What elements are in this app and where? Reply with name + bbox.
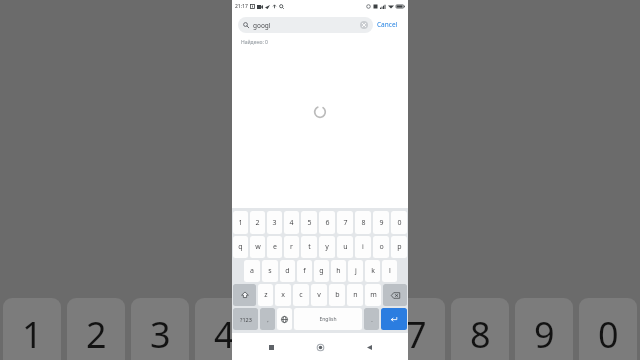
staticText: Cancel <box>377 20 398 29</box>
button[interactable]: a <box>244 260 260 282</box>
button[interactable]: googl <box>238 17 373 33</box>
staticText: 9 <box>379 218 384 228</box>
staticText: 1 <box>22 310 43 359</box>
button[interactable]: c <box>293 284 309 306</box>
button[interactable]: 8 <box>355 211 371 234</box>
staticText: s <box>268 266 272 276</box>
button[interactable]: m <box>365 284 381 306</box>
staticText: h <box>336 266 341 276</box>
staticText: 0 <box>397 218 402 228</box>
staticText: z <box>264 290 268 300</box>
staticText: 9 <box>534 310 555 359</box>
button[interactable]: Backspace <box>383 284 407 306</box>
staticText: 4 <box>214 310 235 359</box>
staticText: 5 <box>307 218 312 228</box>
button[interactable]: v <box>311 284 327 306</box>
staticText: ?123 <box>240 316 252 323</box>
staticText: 3 <box>150 310 171 359</box>
staticText: g <box>319 266 324 276</box>
button[interactable]: 3 <box>267 211 282 234</box>
button[interactable]: Cancel <box>373 16 402 33</box>
staticText: 5 <box>278 310 299 359</box>
button[interactable]: s <box>262 260 278 282</box>
button[interactable]: Recent apps <box>261 337 281 357</box>
staticText: l <box>389 266 391 276</box>
staticText: f <box>303 266 306 276</box>
button[interactable]: z <box>258 284 273 306</box>
button[interactable]: i <box>355 236 371 258</box>
button[interactable]: 9 <box>373 211 389 234</box>
staticText: . <box>371 316 373 323</box>
staticText: j <box>355 266 357 276</box>
staticText: googl <box>253 21 271 30</box>
staticText: k <box>371 266 375 276</box>
staticText: 0 <box>598 310 619 359</box>
button[interactable]: w <box>250 236 265 258</box>
button[interactable]: k <box>365 260 380 282</box>
button[interactable]: t <box>301 236 317 258</box>
button[interactable]: 4 <box>284 211 299 234</box>
staticText: c <box>299 290 303 300</box>
button[interactable]: 5 <box>301 211 317 234</box>
button[interactable]: English <box>294 308 362 330</box>
button[interactable]: q <box>233 236 248 258</box>
button[interactable]: Home <box>310 337 330 357</box>
button[interactable]: n <box>347 284 363 306</box>
staticText: o <box>379 242 384 252</box>
staticText: y <box>325 242 329 252</box>
button[interactable]: 2 <box>250 211 265 234</box>
button[interactable]: , <box>260 308 275 330</box>
staticText: 7 <box>406 310 427 359</box>
button[interactable]: Change language <box>277 308 292 330</box>
button[interactable]: 1 <box>233 211 248 234</box>
staticText: 3 <box>272 218 277 228</box>
staticText: m <box>370 290 377 300</box>
button[interactable]: u <box>337 236 353 258</box>
button[interactable]: . <box>364 308 379 330</box>
staticText: w <box>255 242 261 252</box>
staticText: 6 <box>342 310 363 359</box>
staticText: 8 <box>470 310 491 359</box>
button[interactable]: g <box>314 260 329 282</box>
staticText: 4 <box>289 218 294 228</box>
button[interactable]: 7 <box>337 211 353 234</box>
staticText: 8 <box>361 218 366 228</box>
button[interactable]: 6 <box>319 211 335 234</box>
button[interactable]: 0 <box>391 211 407 234</box>
button[interactable]: o <box>373 236 389 258</box>
button[interactable]: f <box>297 260 312 282</box>
button[interactable]: j <box>348 260 363 282</box>
button[interactable]: b <box>329 284 345 306</box>
staticText: d <box>285 266 290 276</box>
staticText: b <box>335 290 340 300</box>
button[interactable]: d <box>280 260 295 282</box>
button[interactable]: ?123 <box>233 308 258 330</box>
staticText: Найдено: 0 <box>241 39 268 46</box>
staticText: 7 <box>343 218 348 228</box>
staticText: 21:17 <box>235 3 248 10</box>
button[interactable]: Clear search <box>360 21 368 29</box>
staticText: v <box>317 290 321 300</box>
staticText: 2 <box>255 218 260 228</box>
staticText: u <box>343 242 348 252</box>
staticText: 1 <box>238 218 243 228</box>
button[interactable]: x <box>275 284 291 306</box>
button[interactable]: Back <box>359 337 379 357</box>
button[interactable]: p <box>391 236 407 258</box>
staticText: x <box>281 290 285 300</box>
button[interactable]: e <box>267 236 282 258</box>
staticText: e <box>273 242 277 252</box>
button[interactable]: Shift <box>233 284 256 306</box>
staticText: t <box>308 242 311 252</box>
button[interactable]: r <box>284 236 299 258</box>
staticText: 2 <box>86 310 107 359</box>
staticText: a <box>250 266 254 276</box>
staticText: , <box>267 316 269 323</box>
staticText: 6 <box>325 218 330 228</box>
button[interactable]: Enter <box>381 308 407 330</box>
staticText: n <box>353 290 358 300</box>
button[interactable]: h <box>331 260 346 282</box>
button[interactable]: l <box>382 260 397 282</box>
button[interactable]: y <box>319 236 335 258</box>
staticText: English <box>319 316 337 323</box>
